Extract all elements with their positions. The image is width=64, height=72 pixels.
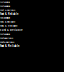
staticText: Fast & Reliable <box>0 5 10 7</box>
staticText: Fast & Reliable <box>0 21 15 23</box>
staticText: Fast & Reliable <box>0 8 15 11</box>
staticText: Fast & Reliable <box>0 44 20 48</box>
staticText: Fast & Reliable <box>0 12 18 16</box>
staticText: Fast & Reliable <box>0 40 14 43</box>
staticText: Fast & Reliable <box>0 1 10 3</box>
staticText: Fast & Reliable <box>0 24 17 27</box>
staticText: Fast & Reliable <box>0 28 23 32</box>
staticText: Fast & Reliable <box>0 17 10 19</box>
staticText: Fast & Reliable <box>0 33 10 35</box>
staticText: Fast & Reliable <box>0 37 13 39</box>
